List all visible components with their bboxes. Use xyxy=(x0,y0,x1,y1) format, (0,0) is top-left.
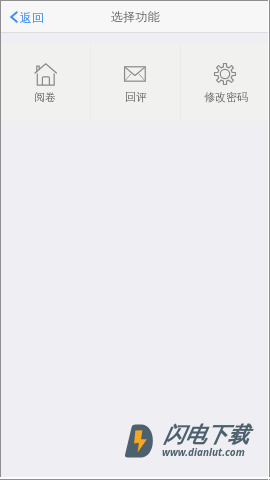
button[interactable]: 阅卷 xyxy=(0,44,90,121)
staticText: 修改密码 xyxy=(204,90,248,104)
staticText: 返回 xyxy=(20,10,44,25)
staticText: www.dianlut.com xyxy=(162,445,245,459)
other: 闪电下载 logo xyxy=(124,424,156,458)
button[interactable]: 回评 xyxy=(91,44,180,121)
button[interactable]: 返回 xyxy=(0,1,52,33)
staticText: 选择功能 xyxy=(111,9,160,24)
button[interactable]: 修改密码 xyxy=(181,44,270,121)
staticText: 闪电下载 xyxy=(163,421,249,448)
staticText: 阅卷 xyxy=(34,90,56,104)
staticText: 回评 xyxy=(125,90,147,104)
